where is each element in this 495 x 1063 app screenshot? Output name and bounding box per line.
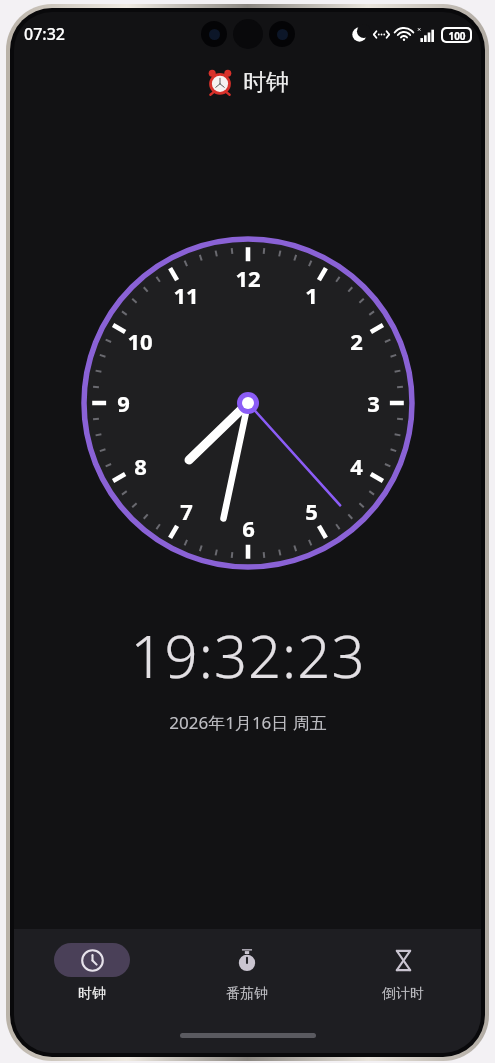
staticText: 10 — [127, 326, 153, 356]
staticText: 3 — [367, 388, 380, 418]
staticText: 7 — [180, 496, 193, 526]
staticText: 时钟 — [78, 985, 106, 1003]
button[interactable]: Clock — [14, 929, 169, 1017]
staticText: 8 — [134, 451, 147, 481]
staticText: 07:32 — [24, 23, 65, 45]
staticText: 5 — [305, 496, 318, 526]
staticText: 6 — [242, 513, 255, 543]
staticText: 时钟 — [243, 68, 289, 97]
staticText: 1 — [305, 280, 318, 310]
other: Pomodoro timer — [235, 948, 259, 972]
staticText: 4 — [350, 451, 363, 481]
staticText: 2026年1月16日 周五 — [169, 711, 327, 734]
staticText: 11 — [173, 280, 199, 310]
staticText: 19:32:23 — [130, 616, 366, 695]
button[interactable]: Pomodoro timer — [169, 929, 325, 1017]
staticText: 12 — [235, 263, 261, 293]
staticText: 100 — [448, 29, 466, 41]
other: Clock — [81, 949, 104, 972]
staticText: 2 — [350, 326, 363, 356]
other: Countdown — [392, 949, 415, 972]
staticText: 番茄钟 — [226, 985, 268, 1003]
staticText: 9 — [117, 388, 130, 418]
button[interactable]: Countdown — [325, 929, 481, 1017]
staticText: 倒计时 — [382, 985, 424, 1003]
